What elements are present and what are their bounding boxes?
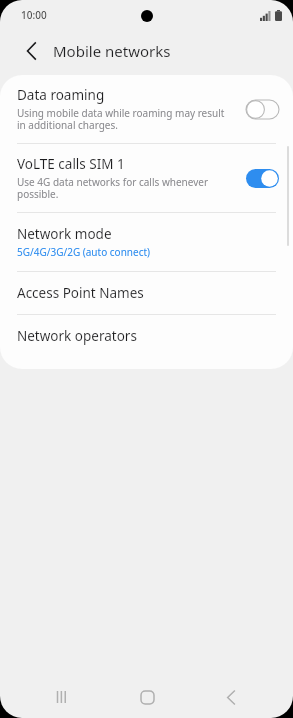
button[interactable]: Data roaming — [0, 75, 293, 143]
button[interactable]: Back — [18, 38, 44, 64]
staticText: Data roaming — [17, 86, 105, 104]
button[interactable]: Off — [246, 100, 279, 119]
button[interactable]: Access Point Names — [0, 272, 293, 314]
staticText: Network operators — [17, 327, 137, 345]
staticText: Use 4G data networks for calls whenever … — [17, 175, 209, 201]
staticText: VoLTE calls SIM 1 — [17, 155, 125, 173]
button[interactable]: On — [246, 169, 279, 188]
button[interactable]: Recent apps — [40, 676, 84, 718]
button[interactable]: Network mode — [0, 213, 293, 271]
staticText: Access Point Names — [17, 284, 144, 302]
staticText: 10:00 — [21, 8, 47, 22]
button[interactable]: VoLTE calls SIM 1 — [0, 144, 293, 212]
staticText: 5G/4G/3G/2G (auto connect) — [17, 245, 151, 259]
staticText: Mobile networks — [53, 41, 171, 61]
button[interactable]: Home — [125, 676, 169, 718]
staticText: Network mode — [17, 225, 112, 243]
staticText: Using mobile data while roaming may resu… — [17, 106, 225, 132]
button[interactable]: Network operators — [0, 315, 293, 357]
button[interactable]: Back — [209, 676, 253, 718]
